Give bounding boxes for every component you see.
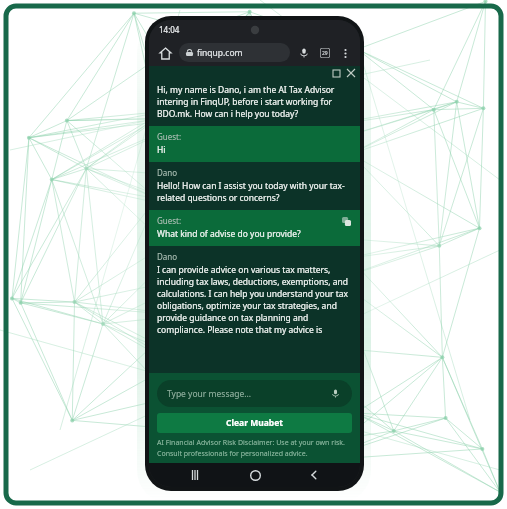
button[interactable]: Voice input: [329, 387, 342, 400]
button[interactable]: Close: [344, 66, 357, 79]
button[interactable]: Back: [301, 463, 327, 487]
staticText: finqup.com: [197, 47, 243, 59]
staticText: Guest:: [157, 131, 182, 142]
staticText: 14:04: [159, 24, 180, 35]
button[interactable]: Home: [242, 463, 268, 487]
staticText: 29: [322, 50, 328, 57]
button[interactable]: Recent apps: [182, 463, 208, 487]
staticText: Hi, my name is Dano, i am the AI Tax Adv…: [157, 84, 352, 120]
button[interactable]: More options: [337, 45, 353, 61]
button[interactable]: Guest:: [149, 126, 360, 162]
staticText: I can provide advice on various tax matt…: [157, 264, 352, 336]
button[interactable]: Dano: [149, 246, 360, 342]
button[interactable]: Type your message...: [157, 380, 352, 407]
button[interactable]: Maximize: [330, 67, 342, 79]
staticText: Clear Muabet: [226, 417, 283, 429]
staticText: Guest:: [157, 215, 182, 226]
staticText: AI Financial Advisor Risk Disclaimer: Us…: [157, 438, 352, 458]
staticText: Hi: [157, 144, 166, 156]
button[interactable]: Clear Muabet: [157, 413, 352, 433]
button[interactable]: Voice search: [296, 45, 312, 61]
button[interactable]: finqup.com: [179, 43, 290, 62]
button[interactable]: Copy message: [340, 215, 352, 227]
button[interactable]: Guest:: [149, 210, 360, 246]
staticText: Dano: [157, 251, 178, 262]
staticText: What kind of advise do you provide?: [157, 228, 301, 240]
staticText: Hello! How can I assist you today with y…: [157, 180, 352, 204]
button[interactable]: Dano: [149, 162, 360, 210]
button[interactable]: Tabs: [317, 45, 333, 61]
staticText: Type your message...: [167, 388, 329, 400]
staticText: Dano: [157, 167, 178, 178]
button[interactable]: Home: [156, 44, 174, 62]
button[interactable]: Hi, my name is Dano, i am the AI Tax Adv…: [149, 79, 360, 126]
